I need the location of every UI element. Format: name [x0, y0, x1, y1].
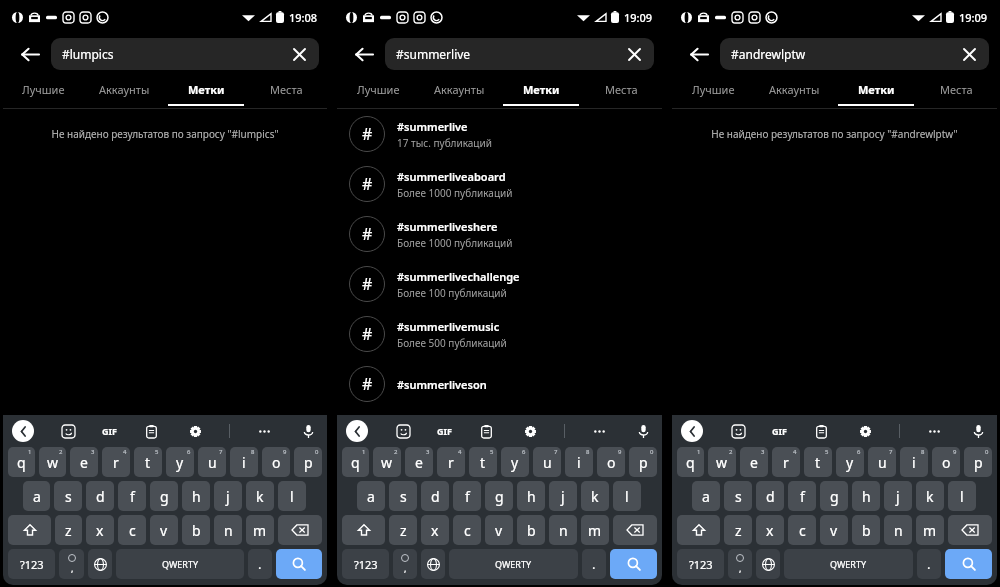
button[interactable]: i	[565, 447, 593, 477]
button[interactable]: g	[150, 481, 178, 511]
button[interactable]: l	[613, 481, 641, 511]
button[interactable]: u	[868, 447, 896, 477]
button[interactable]: q	[342, 447, 369, 477]
button[interactable]: Аккаунты	[84, 76, 165, 108]
button[interactable]: r	[437, 447, 465, 477]
button[interactable]: h	[517, 481, 545, 511]
button[interactable]: Backspace	[278, 515, 322, 545]
button[interactable]: Shift	[677, 515, 720, 545]
button[interactable]: p	[964, 447, 992, 477]
button[interactable]: Shift	[8, 515, 51, 545]
button[interactable]: u	[198, 447, 226, 477]
button[interactable]: Back	[681, 420, 703, 442]
button[interactable]: ?123	[677, 549, 724, 579]
button[interactable]: b	[182, 515, 210, 545]
button[interactable]: Места	[581, 76, 662, 108]
button[interactable]: More options	[924, 421, 944, 441]
button[interactable]: o	[932, 447, 960, 477]
button[interactable]: f	[453, 481, 481, 511]
button[interactable]: a	[23, 481, 50, 511]
button[interactable]: b	[852, 515, 880, 545]
button[interactable]: Voice input	[298, 421, 318, 441]
button[interactable]: Back	[11, 36, 47, 72]
button[interactable]: g	[820, 481, 848, 511]
button[interactable]: s	[724, 481, 752, 511]
button[interactable]: #	[337, 109, 662, 159]
button[interactable]: l	[948, 481, 976, 511]
button[interactable]: m	[246, 515, 274, 545]
button[interactable]: Search	[276, 549, 322, 579]
button[interactable]: b	[517, 515, 545, 545]
button[interactable]: e	[405, 447, 433, 477]
button[interactable]: x	[421, 515, 449, 545]
button[interactable]: Лучшие	[3, 76, 84, 108]
button[interactable]: .	[248, 549, 272, 579]
button[interactable]: d	[86, 481, 114, 511]
button[interactable]: y	[836, 447, 864, 477]
button[interactable]: .	[917, 549, 941, 579]
button[interactable]: Search	[610, 549, 657, 579]
button[interactable]: a	[357, 481, 385, 511]
button[interactable]: y	[166, 447, 194, 477]
button[interactable]: w	[373, 447, 401, 477]
button[interactable]: Voice input	[633, 421, 653, 441]
button[interactable]: Settings	[520, 421, 540, 441]
button[interactable]: t	[134, 447, 162, 477]
button[interactable]: r	[102, 447, 130, 477]
button[interactable]: q	[677, 447, 704, 477]
button[interactable]: .	[582, 549, 606, 579]
button[interactable]: w	[39, 447, 66, 477]
button[interactable]: Места	[246, 76, 327, 108]
button[interactable]: w	[708, 447, 736, 477]
button[interactable]: p	[629, 447, 657, 477]
button[interactable]: Search	[945, 549, 992, 579]
button[interactable]: o	[262, 447, 290, 477]
button[interactable]: x	[86, 515, 114, 545]
button[interactable]: d	[421, 481, 449, 511]
button[interactable]: Метки	[500, 76, 581, 108]
button[interactable]: m	[581, 515, 609, 545]
button[interactable]: v	[150, 515, 178, 545]
button[interactable]: p	[294, 447, 322, 477]
button[interactable]: h	[852, 481, 880, 511]
button[interactable]: y	[501, 447, 529, 477]
button[interactable]: f	[788, 481, 816, 511]
button[interactable]: k	[246, 481, 274, 511]
button[interactable]: Backspace	[948, 515, 992, 545]
button[interactable]: t	[804, 447, 832, 477]
button[interactable]: #	[337, 359, 662, 409]
button[interactable]: Аккаунты	[419, 76, 500, 108]
button[interactable]: Emoji	[728, 421, 748, 441]
button[interactable]: Clear	[290, 45, 308, 63]
button[interactable]: e	[740, 447, 768, 477]
button[interactable]: z	[389, 515, 417, 545]
button[interactable]: #	[337, 309, 662, 359]
button[interactable]: QWERTY	[784, 549, 913, 579]
button[interactable]: ,	[728, 549, 752, 579]
button[interactable]: Back	[346, 420, 368, 442]
button[interactable]: ,	[59, 549, 84, 579]
button[interactable]: c	[788, 515, 816, 545]
button[interactable]: o	[597, 447, 625, 477]
button[interactable]: n	[884, 515, 912, 545]
button[interactable]: q	[8, 447, 35, 477]
button[interactable]: Change language	[421, 549, 445, 579]
button[interactable]: c	[453, 515, 481, 545]
button[interactable]: #summerlive	[385, 38, 654, 70]
button[interactable]: g	[485, 481, 513, 511]
button[interactable]: Метки	[835, 76, 916, 108]
button[interactable]: i	[230, 447, 258, 477]
button[interactable]: Clipboard	[811, 421, 831, 441]
button[interactable]: ,	[393, 549, 417, 579]
button[interactable]: j	[884, 481, 912, 511]
button[interactable]: #	[337, 259, 662, 309]
button[interactable]: r	[772, 447, 800, 477]
button[interactable]: Settings	[855, 421, 875, 441]
button[interactable]: Change language	[88, 549, 112, 579]
button[interactable]: Voice input	[968, 421, 988, 441]
button[interactable]: ?123	[8, 549, 55, 579]
button[interactable]: GIF	[772, 425, 787, 437]
button[interactable]: Места	[916, 76, 997, 108]
button[interactable]: a	[692, 481, 720, 511]
button[interactable]: Лучшие	[672, 76, 754, 108]
